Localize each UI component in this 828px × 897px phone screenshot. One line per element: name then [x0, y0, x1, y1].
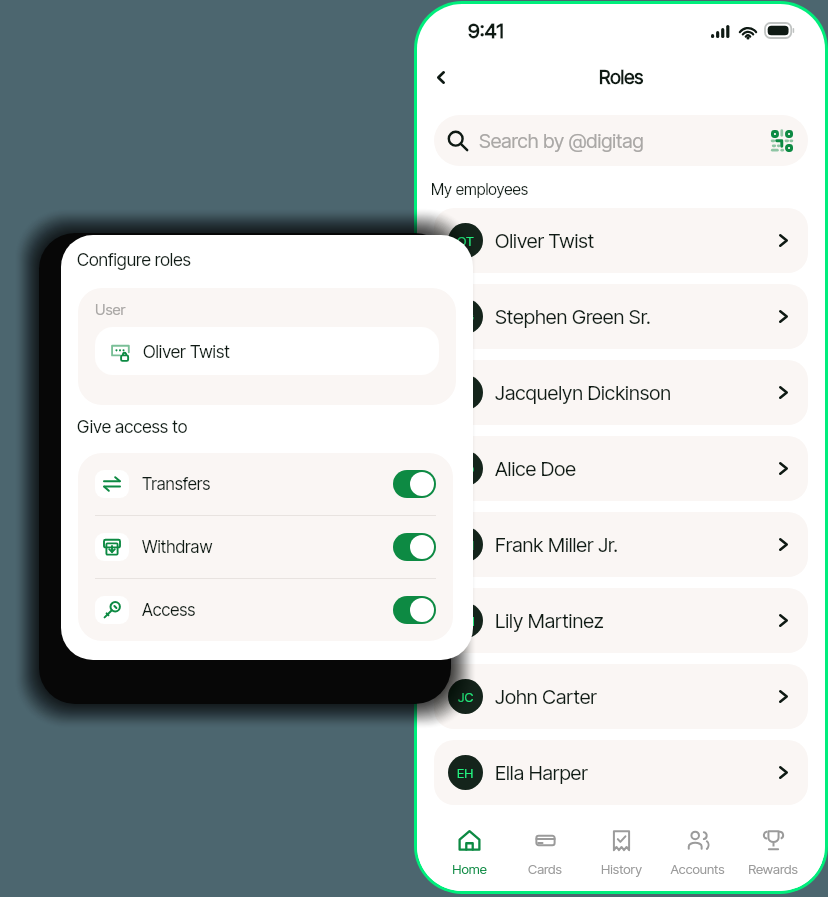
button[interactable]: OT: [434, 208, 808, 273]
staticText: Mia Robinson: [495, 837, 611, 861]
button[interactable]: History: [583, 810, 659, 880]
staticText: Frank Miller Jr.: [495, 533, 619, 557]
button[interactable]: Withdraw toggle: [393, 533, 436, 561]
staticText: User: [95, 300, 126, 318]
staticText: Accounts: [670, 861, 725, 877]
staticText: MR: [456, 841, 475, 857]
staticText: Lily Martinez: [495, 609, 604, 633]
staticText: Rewards: [748, 861, 798, 877]
staticText: History: [601, 861, 642, 877]
button[interactable]: Oliver Twist: [95, 327, 439, 375]
button[interactable]: Withdraw: [95, 516, 436, 578]
button[interactable]: FM: [434, 512, 808, 577]
staticText: Withdraw: [142, 537, 213, 558]
button[interactable]: Search by @digitag: [434, 115, 808, 166]
staticText: Configure roles: [77, 249, 191, 270]
staticText: Cards: [528, 861, 562, 877]
staticText: Give access to: [77, 416, 188, 437]
staticText: Oliver Twist: [495, 229, 595, 253]
staticText: EH: [457, 765, 474, 781]
staticText: Transfers: [142, 474, 211, 495]
staticText: Home: [452, 861, 487, 877]
staticText: Roles: [599, 66, 644, 89]
button[interactable]: Back: [420, 57, 462, 98]
button[interactable]: Home: [431, 810, 507, 880]
staticText: Search by @digitag: [479, 129, 644, 153]
staticText: JD: [458, 385, 474, 401]
button[interactable]: Rewards: [735, 810, 811, 880]
staticText: Alice Doe: [495, 457, 576, 481]
button[interactable]: JD: [434, 360, 808, 425]
staticText: Stephen Green Sr.: [495, 305, 651, 329]
button[interactable]: AD: [434, 436, 808, 501]
button[interactable]: Access: [95, 579, 436, 641]
staticText: SG: [457, 309, 474, 325]
button[interactable]: Scan QR code: [771, 130, 793, 152]
button[interactable]: MR: [434, 816, 808, 881]
button[interactable]: Cards: [507, 810, 583, 880]
button[interactable]: EH: [434, 740, 808, 805]
staticText: AD: [457, 461, 474, 477]
button[interactable]: Accounts: [659, 810, 735, 880]
staticText: John Carter: [495, 685, 597, 709]
staticText: Jacquelyn Dickinson: [495, 381, 671, 405]
button[interactable]: SG: [434, 284, 808, 349]
staticText: LM: [457, 613, 475, 629]
staticText: OT: [457, 233, 474, 249]
staticText: Ella Harper: [495, 761, 588, 785]
button[interactable]: LM: [434, 588, 808, 653]
button[interactable]: JC: [434, 664, 808, 729]
staticText: Oliver Twist: [143, 341, 230, 362]
button[interactable]: Transfers: [95, 453, 436, 515]
staticText: 9:41: [468, 18, 504, 43]
staticText: JC: [458, 689, 474, 705]
button[interactable]: Transfers toggle: [393, 470, 436, 498]
staticText: FM: [456, 537, 475, 553]
button[interactable]: Access toggle: [393, 596, 436, 624]
staticText: My employees: [431, 180, 529, 199]
staticText: Access: [142, 600, 196, 621]
